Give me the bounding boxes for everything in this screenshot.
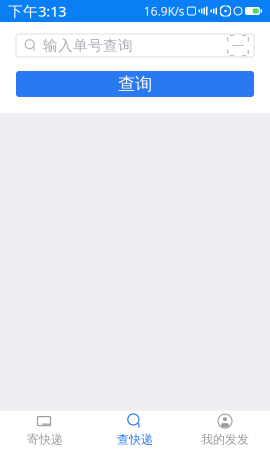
- button[interactable]: 查快递: [90, 410, 180, 450]
- staticText: 输入单号查询: [43, 36, 133, 54]
- staticText: 查询: [118, 73, 152, 95]
- staticText: 寄快递: [27, 432, 63, 447]
- staticText: 16.9K/s: [143, 3, 184, 19]
- staticText: 查快递: [117, 432, 153, 447]
- staticText: 下午3:13: [8, 1, 66, 21]
- staticText: 我的发发: [201, 432, 249, 447]
- button[interactable]: 我的发发: [180, 410, 270, 450]
- button[interactable]: 查询: [16, 71, 254, 97]
- button[interactable]: 输入单号查询: [16, 34, 254, 57]
- staticText: [184, 3, 187, 19]
- button[interactable]: 寄快递: [0, 410, 90, 450]
